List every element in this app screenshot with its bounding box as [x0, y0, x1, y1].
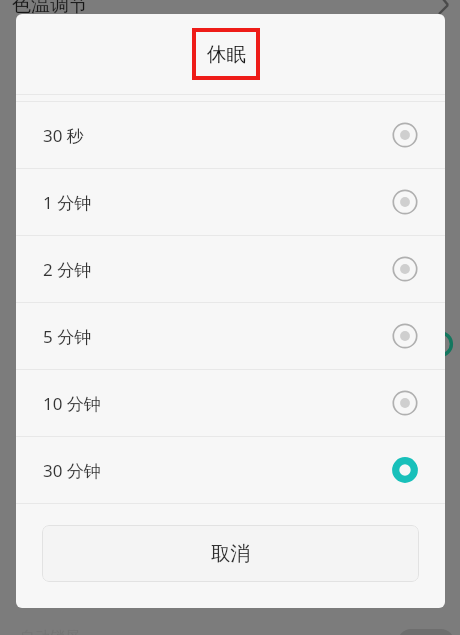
button[interactable]: Toggle auto lock	[398, 629, 454, 635]
button[interactable]: 30 分钟	[16, 437, 445, 503]
staticText: 取消	[211, 541, 250, 566]
staticText: 色温调节	[12, 0, 88, 17]
button[interactable]: 1 分钟	[16, 169, 445, 235]
button[interactable]: Open colour temperature	[436, 0, 456, 14]
staticText: 30 秒	[43, 124, 84, 147]
button[interactable]: 30 秒	[16, 102, 445, 168]
button[interactable]: 10 分钟	[16, 370, 445, 436]
staticText: 10 分钟	[43, 392, 101, 415]
staticText: 1 分钟	[43, 191, 92, 214]
staticText: 2 分钟	[43, 258, 92, 281]
button[interactable]: 2 分钟	[16, 236, 445, 302]
staticText: 30 分钟	[43, 459, 101, 482]
button[interactable]: 5 分钟	[16, 303, 445, 369]
staticText: 休眠	[207, 42, 246, 67]
button[interactable]: 取消	[42, 525, 419, 582]
staticText: 5 分钟	[43, 325, 92, 348]
